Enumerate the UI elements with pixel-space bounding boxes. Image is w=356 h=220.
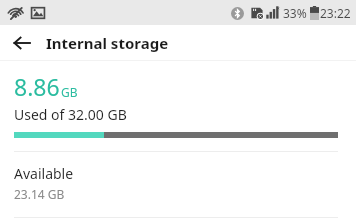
staticText: Available	[14, 164, 74, 183]
staticText: 23.14 GB	[14, 186, 65, 202]
staticText: Internal storage	[46, 33, 169, 53]
staticText: 23:22	[320, 5, 351, 21]
staticText: 8.86	[14, 71, 60, 102]
staticText: Used of 32.00 GB	[14, 105, 127, 124]
button[interactable]: Back	[6, 27, 38, 59]
staticText: 33%	[283, 5, 307, 21]
button[interactable]: Available	[0, 163, 356, 206]
staticText: GB	[61, 84, 78, 100]
